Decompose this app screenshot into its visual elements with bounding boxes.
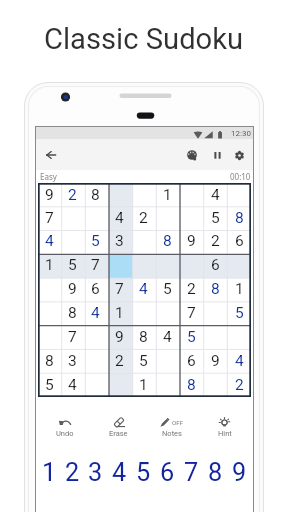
button[interactable]: 9 <box>38 183 61 206</box>
button[interactable]: Settings <box>230 146 248 164</box>
button[interactable]: 3 <box>107 229 131 253</box>
button[interactable]: 8 <box>38 349 61 373</box>
button[interactable]: Erase <box>92 414 145 448</box>
button[interactable] <box>131 253 155 277</box>
button[interactable]: 5 <box>179 325 203 349</box>
button[interactable] <box>61 229 84 253</box>
button[interactable]: 3 <box>84 455 107 490</box>
button[interactable]: 9 <box>179 229 203 253</box>
button[interactable]: 2 <box>179 277 203 301</box>
button[interactable] <box>155 253 179 277</box>
button[interactable]: 4 <box>155 325 179 349</box>
button[interactable] <box>38 301 61 325</box>
button[interactable] <box>107 373 131 397</box>
button[interactable]: 1 <box>38 253 61 277</box>
button[interactable]: 2 <box>131 206 155 229</box>
button[interactable]: 2 <box>61 455 84 490</box>
button[interactable]: Back <box>41 145 61 165</box>
button[interactable] <box>155 373 179 397</box>
button[interactable]: 8 <box>203 277 227 301</box>
button[interactable]: 7 <box>179 301 203 325</box>
button[interactable]: 4 <box>84 301 107 325</box>
button[interactable] <box>38 325 61 349</box>
button[interactable]: 4 <box>38 229 61 253</box>
button[interactable] <box>203 325 227 349</box>
button[interactable]: 4 <box>107 455 131 490</box>
button[interactable]: Theme <box>183 146 201 164</box>
button[interactable]: 1 <box>131 373 155 397</box>
button[interactable]: 6 <box>84 277 107 301</box>
button[interactable] <box>155 206 179 229</box>
button[interactable] <box>227 253 251 277</box>
button[interactable] <box>107 253 131 277</box>
button[interactable]: 2 <box>227 373 251 397</box>
button[interactable]: 5 <box>61 253 84 277</box>
button[interactable] <box>131 183 155 206</box>
button[interactable] <box>84 206 107 229</box>
button[interactable]: 4 <box>61 373 84 397</box>
button[interactable] <box>155 301 179 325</box>
button[interactable]: Pause <box>208 146 226 164</box>
button[interactable] <box>131 301 155 325</box>
button[interactable]: 7 <box>61 325 84 349</box>
button[interactable] <box>107 183 131 206</box>
staticText: 2 <box>139 209 148 227</box>
button[interactable]: 7 <box>38 206 61 229</box>
button[interactable] <box>227 325 251 349</box>
button[interactable]: 1 <box>227 277 251 301</box>
button[interactable]: 9 <box>107 325 131 349</box>
button[interactable] <box>84 325 107 349</box>
button[interactable]: 2 <box>61 183 84 206</box>
button[interactable]: 4 <box>203 183 227 206</box>
button[interactable]: 9 <box>61 277 84 301</box>
button[interactable]: 2 <box>203 229 227 253</box>
button[interactable]: 5 <box>203 206 227 229</box>
button[interactable]: 2 <box>107 349 131 373</box>
button[interactable] <box>203 301 227 325</box>
button[interactable] <box>179 206 203 229</box>
button[interactable]: 1 <box>107 301 131 325</box>
button[interactable]: 1 <box>38 455 61 490</box>
button[interactable]: Undo <box>38 414 92 448</box>
button[interactable]: 6 <box>203 253 227 277</box>
button[interactable]: OFF <box>145 414 198 448</box>
button[interactable]: 9 <box>203 349 227 373</box>
button[interactable]: 5 <box>84 229 107 253</box>
button[interactable]: 8 <box>155 229 179 253</box>
button[interactable]: 5 <box>38 373 61 397</box>
button[interactable] <box>84 349 107 373</box>
button[interactable]: 1 <box>155 183 179 206</box>
button[interactable]: 8 <box>227 206 251 229</box>
button[interactable]: 3 <box>61 349 84 373</box>
button[interactable]: 7 <box>84 253 107 277</box>
button[interactable]: 4 <box>227 349 251 373</box>
button[interactable]: 7 <box>107 277 131 301</box>
staticText: Classic Sudoku <box>44 22 244 56</box>
button[interactable]: 4 <box>131 277 155 301</box>
button[interactable] <box>131 229 155 253</box>
button[interactable] <box>61 206 84 229</box>
button[interactable]: 8 <box>203 455 227 490</box>
button[interactable]: 6 <box>155 455 179 490</box>
button[interactable]: 5 <box>131 349 155 373</box>
button[interactable] <box>155 349 179 373</box>
button[interactable] <box>203 373 227 397</box>
button[interactable]: 8 <box>84 183 107 206</box>
button[interactable]: 8 <box>179 373 203 397</box>
button[interactable]: 8 <box>131 325 155 349</box>
button[interactable]: 4 <box>107 206 131 229</box>
button[interactable]: 9 <box>227 455 251 490</box>
button[interactable] <box>227 183 251 206</box>
button[interactable] <box>84 373 107 397</box>
button[interactable] <box>38 277 61 301</box>
button[interactable]: 6 <box>227 229 251 253</box>
button[interactable]: 7 <box>179 455 203 490</box>
button[interactable]: 8 <box>61 301 84 325</box>
button[interactable]: 5 <box>155 277 179 301</box>
button[interactable]: 6 <box>179 349 203 373</box>
button[interactable] <box>179 253 203 277</box>
button[interactable]: 5 <box>131 455 155 490</box>
button[interactable] <box>179 183 203 206</box>
button[interactable]: Hint <box>198 414 251 448</box>
button[interactable]: 5 <box>227 301 251 325</box>
